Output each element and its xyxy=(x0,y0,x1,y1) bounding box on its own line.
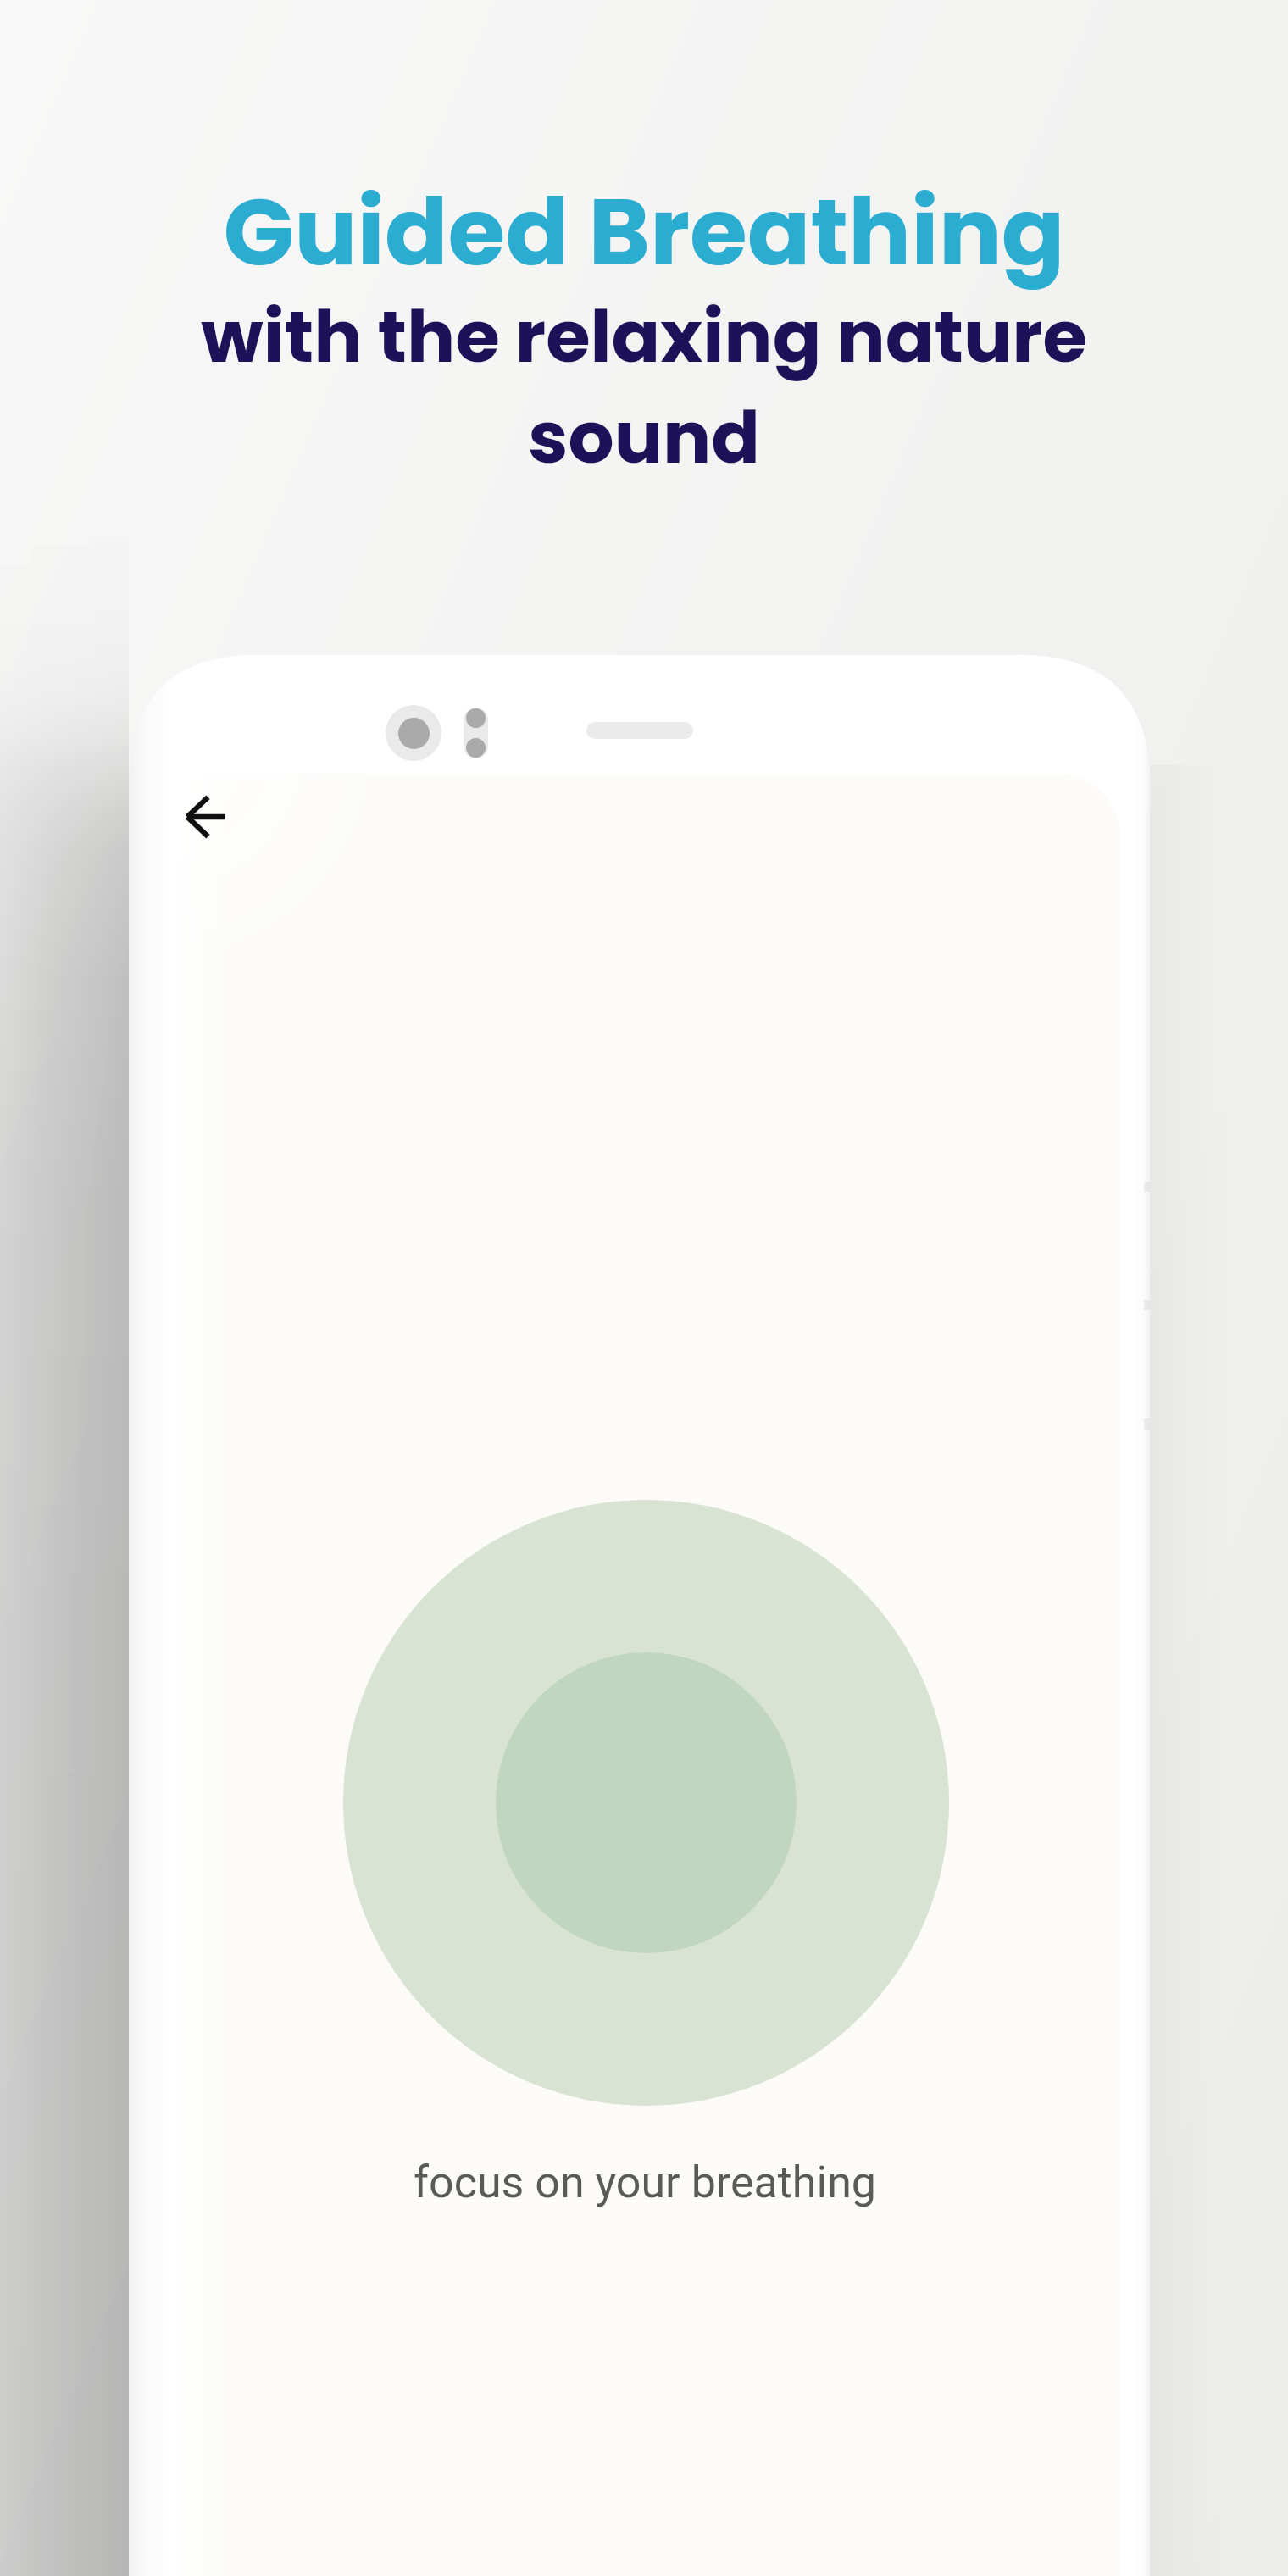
button[interactable]: Breathing animation xyxy=(343,1500,949,2106)
staticText: focus on your breathing xyxy=(169,2157,1120,2208)
staticText: Guided Breathing xyxy=(0,167,1288,297)
button[interactable]: Back xyxy=(169,774,248,859)
staticText: with the relaxing nature sound xyxy=(181,286,1107,487)
